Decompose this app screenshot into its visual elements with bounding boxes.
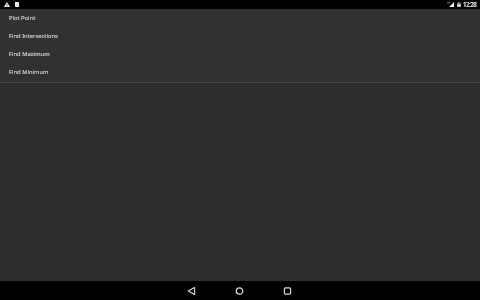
button[interactable]: Back (167, 281, 215, 300)
staticText: Plot Point (9, 14, 36, 22)
button[interactable]: Find Intersections (0, 27, 480, 45)
button[interactable]: Recent apps (263, 281, 311, 300)
staticText: Find Maximum (9, 50, 50, 58)
staticText: 12:28 (463, 0, 477, 8)
staticText: Find Intersections (9, 32, 58, 40)
button[interactable]: Home (215, 281, 263, 300)
staticText: Find Minimum (9, 68, 49, 76)
button[interactable]: Find Maximum (0, 45, 480, 63)
button[interactable]: Plot Point (0, 9, 480, 27)
button[interactable]: Find Minimum (0, 63, 480, 81)
